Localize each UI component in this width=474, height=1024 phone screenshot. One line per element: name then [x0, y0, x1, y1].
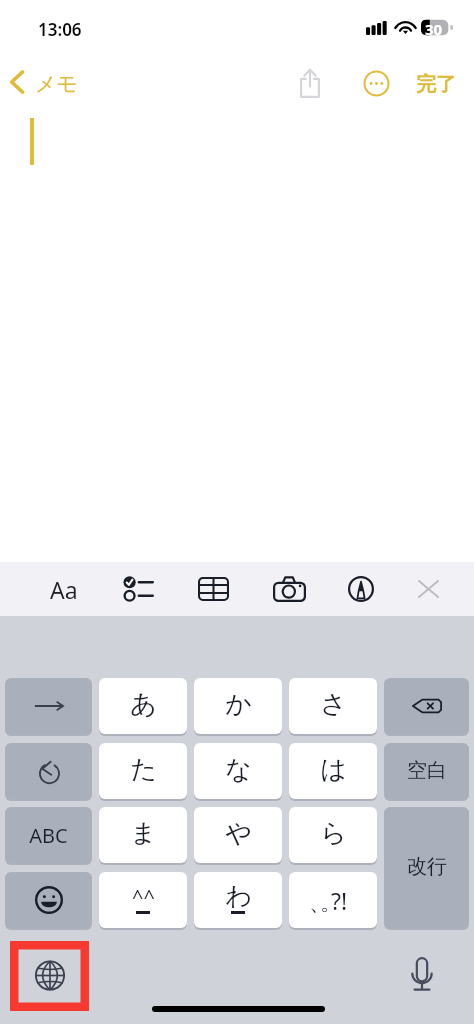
staticText: わ	[225, 880, 252, 913]
button[interactable]: 完了	[408, 64, 464, 105]
button[interactable]: Markup	[339, 567, 383, 611]
staticText: た	[130, 753, 157, 786]
button[interactable]: 、	[289, 872, 377, 928]
staticText: 30	[425, 19, 443, 36]
button[interactable]: か	[194, 678, 282, 734]
button[interactable]: や	[194, 807, 282, 863]
staticText: メモ	[35, 71, 78, 97]
button[interactable]: Change keyboard	[15, 941, 84, 1009]
staticText: 空白	[407, 758, 447, 783]
staticText: ^^	[132, 883, 155, 910]
button[interactable]: あ	[99, 678, 187, 734]
button[interactable]: Close keyboard	[406, 567, 450, 611]
staticText: は	[320, 753, 347, 786]
button[interactable]: ^^	[99, 872, 187, 928]
staticText: 改行	[407, 854, 447, 879]
button[interactable]: Camera	[267, 567, 311, 611]
button[interactable]: は	[289, 743, 377, 799]
staticText: 完了	[416, 72, 456, 97]
staticText: 、	[309, 889, 331, 917]
button[interactable]: Dictation	[395, 946, 449, 1000]
button[interactable]: な	[194, 743, 282, 799]
button[interactable]: ま	[99, 807, 187, 863]
staticText: Aa	[50, 574, 78, 605]
staticText: か	[225, 688, 252, 721]
button[interactable]: 空白	[384, 743, 469, 799]
button[interactable]: ら	[289, 807, 377, 863]
button[interactable]: Next	[5, 678, 92, 734]
button[interactable]: Aa	[42, 567, 86, 611]
button[interactable]: 改行	[384, 807, 469, 928]
button[interactable]: た	[99, 743, 187, 799]
button[interactable]: メモ	[0, 64, 88, 100]
staticText: 13:06	[38, 18, 82, 41]
staticText: ま	[130, 817, 157, 850]
button[interactable]: Delete	[384, 678, 469, 734]
button[interactable]: Table	[191, 567, 235, 611]
staticText: あ	[130, 688, 157, 721]
button[interactable]: Share	[288, 61, 332, 105]
staticText: な	[225, 753, 252, 786]
button[interactable]: ABC	[5, 807, 92, 863]
button[interactable]: Checklist	[116, 567, 160, 611]
button[interactable]: Undo	[5, 743, 92, 799]
staticText: や	[225, 817, 252, 850]
button[interactable]: Emoji	[5, 872, 92, 928]
button[interactable]: More options	[354, 61, 398, 105]
staticText: ABC	[29, 822, 68, 849]
staticText: ?!	[331, 885, 348, 916]
button[interactable]: さ	[289, 678, 377, 734]
staticText: さ	[320, 688, 347, 721]
staticText: 。	[320, 889, 342, 917]
staticText: ら	[320, 817, 347, 850]
button[interactable]: わ	[194, 872, 282, 928]
